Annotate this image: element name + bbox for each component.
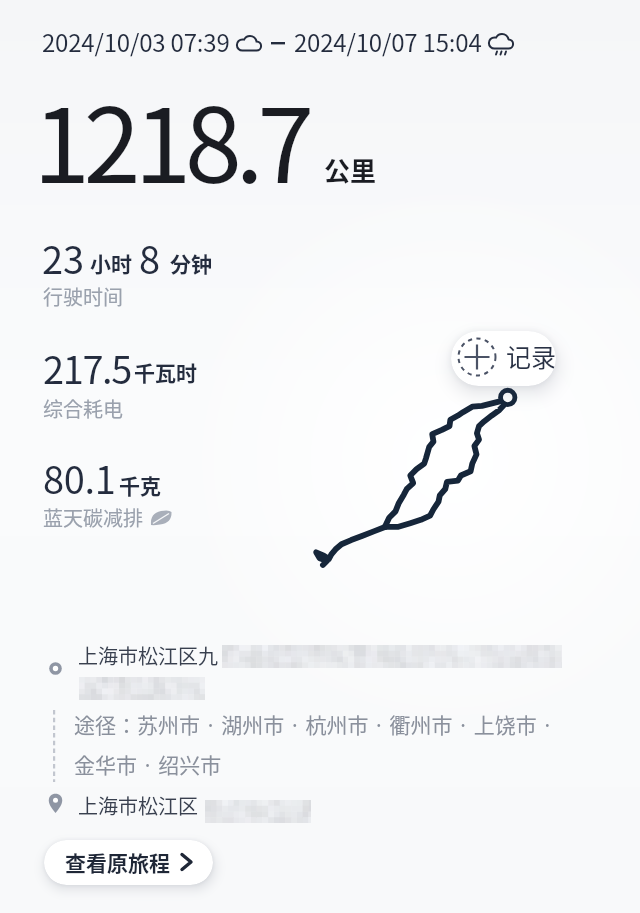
staticText: 23 xyxy=(42,230,85,285)
button[interactable]: 查看原旅程 xyxy=(44,840,213,885)
staticText: 公里 xyxy=(324,151,377,189)
staticText: 上海市松江区九 xyxy=(78,641,218,670)
staticText: 2024/10/03 07:39 xyxy=(42,24,230,59)
staticText: 蓝天碳减排 xyxy=(43,503,143,532)
staticText: 2024/10/07 15:04 xyxy=(294,24,482,59)
staticText: 上海市松江区 xyxy=(78,791,198,820)
staticText: 80.1 xyxy=(43,450,116,505)
staticText: 千克 xyxy=(119,470,161,500)
staticText: 千瓦时 xyxy=(134,357,197,387)
staticText: 途径：苏州市 · 湖州市 · 杭州市 · 衢州市 · 上饶市 · xyxy=(74,709,554,739)
staticText: 小时 xyxy=(90,248,132,278)
staticText: 分钟 xyxy=(170,248,212,278)
staticText: 记录 xyxy=(506,338,556,374)
staticText: 217.5 xyxy=(43,340,131,395)
staticText: 查看原旅程 xyxy=(65,847,170,877)
staticText: 金华市 · 绍兴市 xyxy=(74,749,222,779)
staticText: 综合耗电 xyxy=(43,394,123,423)
staticText: 行驶时间 xyxy=(43,282,123,311)
staticText: 1218.7 xyxy=(33,64,308,213)
button[interactable]: 记录 xyxy=(451,331,556,386)
staticText: 8 xyxy=(139,230,161,285)
